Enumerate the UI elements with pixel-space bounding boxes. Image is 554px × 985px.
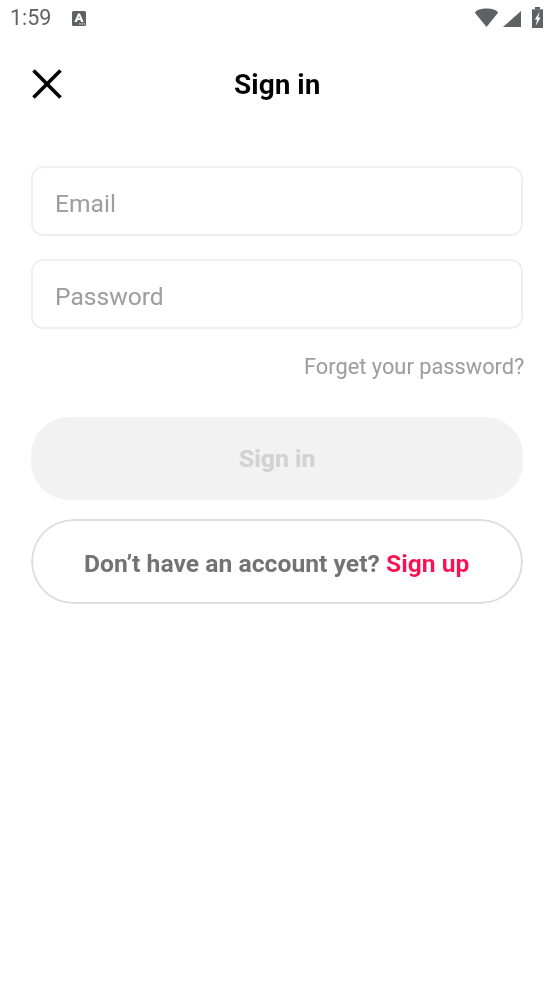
button[interactable]: Don’t have an account yet? Sign up <box>31 519 523 604</box>
staticText: Password <box>55 282 164 311</box>
staticText: Sign in <box>239 444 316 473</box>
button[interactable]: Close <box>19 54 75 110</box>
staticText: Sign in <box>234 68 321 101</box>
staticText: Forget your password? <box>304 354 525 380</box>
button[interactable]: Password <box>31 259 523 329</box>
staticText: 1:59 <box>10 5 52 30</box>
button[interactable]: Sign in <box>31 417 523 500</box>
staticText: Don’t have an account yet? Sign up <box>84 549 470 578</box>
staticText: Email <box>55 189 116 218</box>
button[interactable]: Forget your password? <box>304 346 525 388</box>
button[interactable]: Email <box>31 166 523 236</box>
